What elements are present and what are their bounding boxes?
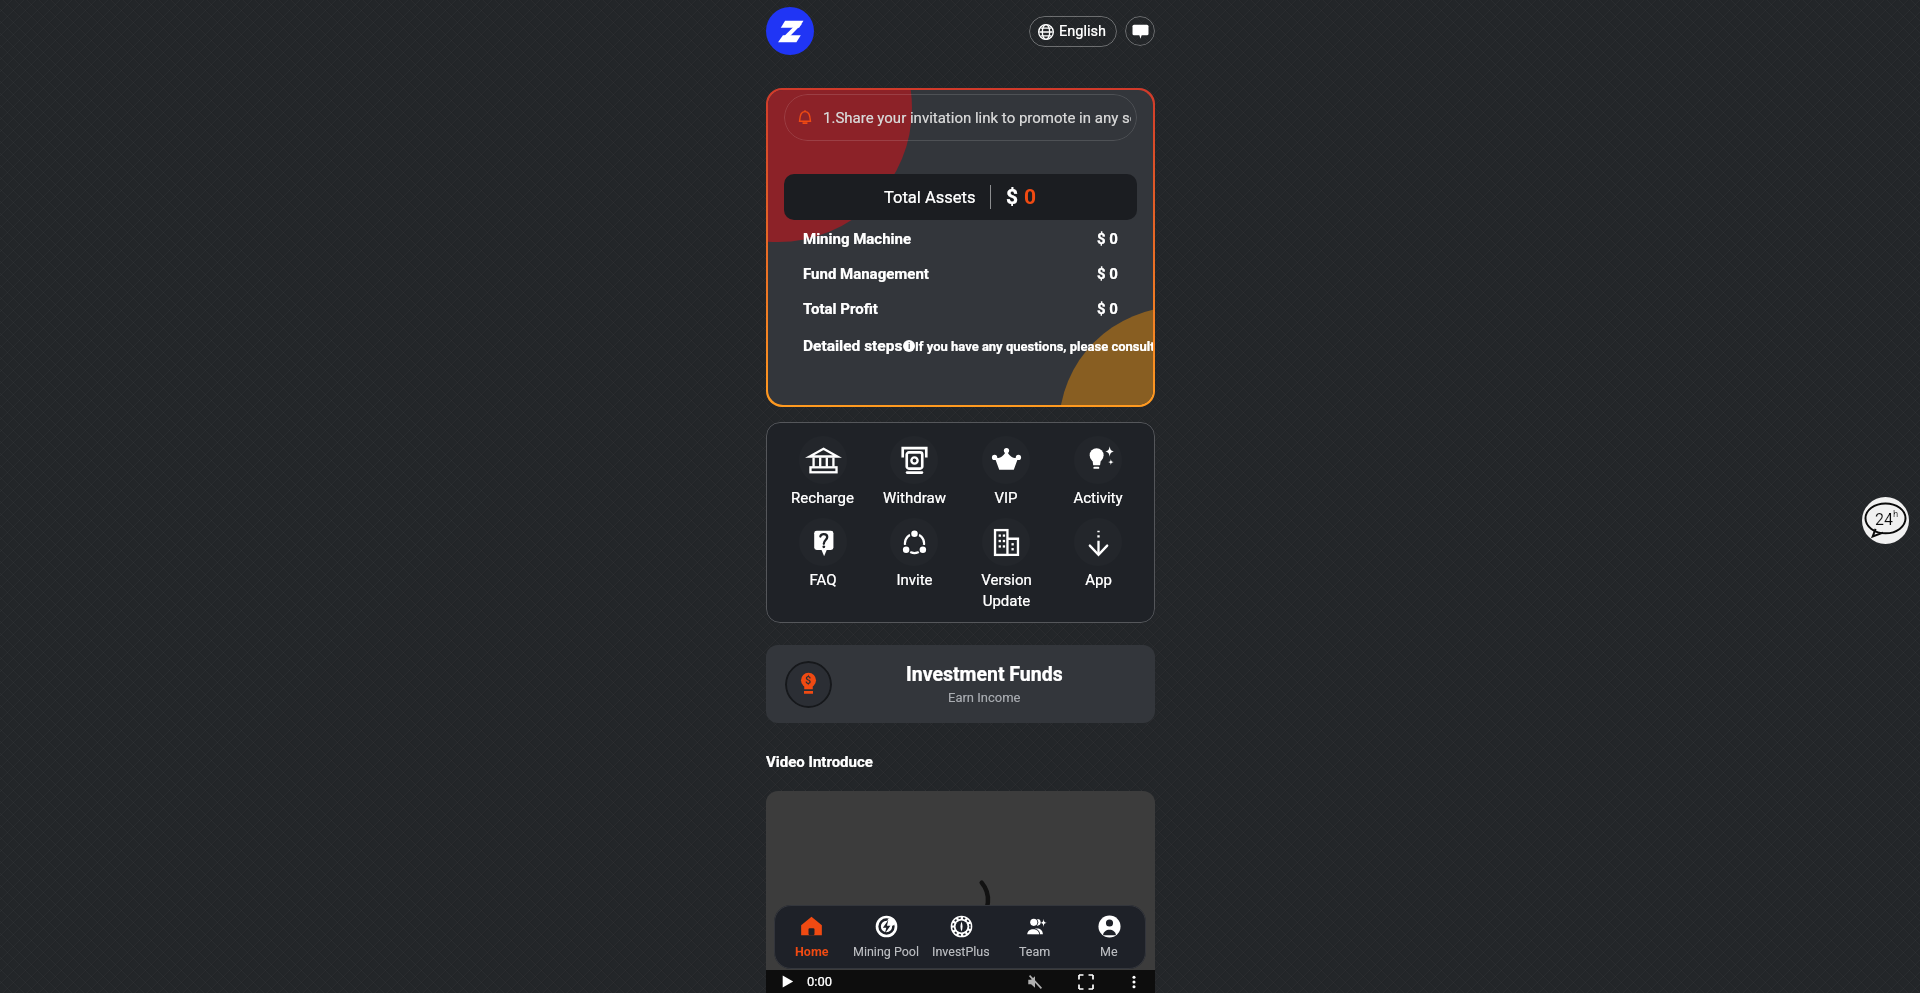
button[interactable]: App logo [766, 7, 814, 55]
button[interactable]: Total Assets [784, 174, 1137, 220]
staticText: 1.Share your invitation link to promote … [823, 109, 1131, 127]
staticText: Mining Machine [803, 230, 912, 248]
button[interactable]: App [1052, 518, 1144, 589]
staticText: $ 0 [1097, 230, 1118, 248]
staticText: Home [795, 944, 829, 959]
staticText: Fund Management [803, 265, 929, 283]
button[interactable]: Mining Pool [849, 905, 924, 969]
button[interactable]: Recharge [777, 436, 868, 507]
staticText: InvestPlus [932, 944, 990, 959]
staticText: VIP [994, 489, 1018, 507]
staticText: 0:00 [807, 974, 833, 989]
staticText: English [1059, 23, 1106, 40]
button[interactable]: 24 hour online support [1862, 497, 1909, 544]
button[interactable]: 1.Share your invitation link to promote … [784, 94, 1137, 141]
staticText: Invite [896, 571, 933, 589]
staticText: $ 0 [1097, 300, 1118, 318]
staticText: FAQ [809, 571, 837, 589]
button[interactable]: Activity [1052, 436, 1144, 507]
button[interactable]: Withdraw [868, 436, 960, 507]
staticText: Total Profit [803, 300, 878, 318]
staticText: If you have any questions, please consul… [915, 339, 1153, 354]
staticText: Version Update [981, 571, 1032, 609]
button[interactable]: Fullscreen [1079, 975, 1093, 989]
button[interactable]: VIP [960, 436, 1052, 507]
button[interactable]: Unmute [1027, 974, 1043, 990]
staticText: Total Assets [884, 188, 976, 207]
staticText: App [1085, 571, 1112, 589]
staticText: Team [1019, 944, 1051, 959]
staticText: Withdraw [883, 489, 946, 507]
button[interactable]: FAQ [777, 518, 868, 589]
button[interactable]: Team [998, 905, 1072, 969]
staticText: $ 0 [1097, 265, 1118, 283]
button[interactable]: $ [766, 645, 1155, 723]
button[interactable]: Customer service messages [1125, 16, 1155, 46]
staticText: Investment Funds [906, 663, 1063, 686]
staticText: 24 [1875, 510, 1893, 529]
button[interactable]: Me [1072, 905, 1146, 969]
button[interactable]: Play [780, 974, 795, 989]
button[interactable]: English [1029, 16, 1117, 47]
staticText: h [1893, 508, 1899, 519]
staticText: Mining Pool [853, 944, 920, 959]
staticText: Activity [1073, 489, 1123, 507]
button[interactable]: Home [774, 905, 849, 969]
button[interactable]: InvestPlus [924, 905, 998, 969]
staticText: Me [1100, 944, 1118, 959]
staticText: Detailed steps [803, 337, 903, 355]
staticText: $ [1006, 185, 1019, 210]
staticText: Earn Income [948, 690, 1021, 705]
staticText: Recharge [791, 489, 854, 507]
button[interactable]: Version Update [960, 518, 1052, 609]
button[interactable]: Invite [868, 518, 960, 589]
staticText: $ [805, 674, 812, 687]
button[interactable]: More options [1127, 975, 1141, 989]
staticText: 0 [1024, 185, 1037, 210]
staticText: Video Introduce [766, 753, 873, 771]
staticText: i [908, 341, 911, 352]
